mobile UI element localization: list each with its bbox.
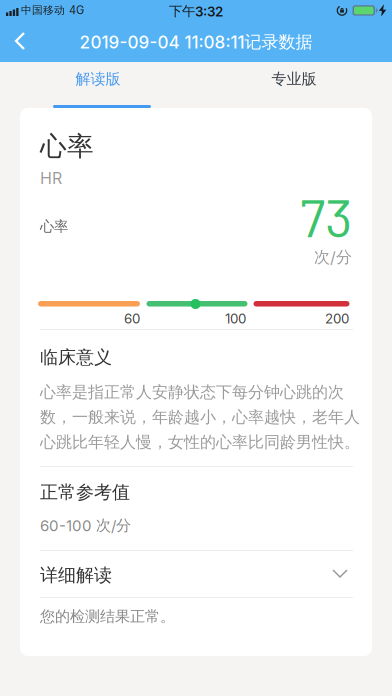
staticText: 数，一般来说，年龄越小，心率越快，老年人 bbox=[40, 407, 360, 427]
staticText: 心跳比年轻人慢，女性的心率比同龄男性快。 bbox=[40, 432, 360, 452]
staticText: 中国移动 bbox=[21, 3, 65, 17]
button[interactable]: 专业版 bbox=[196, 62, 392, 108]
staticText: 心率 bbox=[40, 217, 68, 236]
staticText: 心率是指正常人安静状态下每分钟心跳的次 bbox=[40, 382, 344, 402]
button[interactable]: 解读版 bbox=[0, 62, 196, 108]
staticText: 专业版 bbox=[271, 69, 316, 88]
staticText: 详细解读 bbox=[40, 564, 112, 587]
staticText: 2019-09-04 11:08:11记录数据 bbox=[79, 31, 312, 53]
button[interactable]: 详细解读 bbox=[20, 551, 372, 597]
staticText: 心率 bbox=[40, 129, 94, 163]
staticText: 解读版 bbox=[75, 69, 120, 88]
staticText: 次/分 bbox=[314, 247, 352, 267]
staticText: 下午3:32 bbox=[169, 3, 223, 20]
staticText: 临床意义 bbox=[40, 346, 112, 369]
staticText: 100 bbox=[225, 310, 246, 327]
staticText: 60 bbox=[124, 310, 140, 327]
staticText: 正常参考值 bbox=[40, 481, 130, 504]
staticText: 60-100 次/分 bbox=[40, 516, 131, 535]
button[interactable]: Back bbox=[0, 22, 44, 62]
staticText: 4G bbox=[69, 3, 84, 17]
staticText: 200 bbox=[325, 310, 349, 327]
staticText: HR bbox=[40, 168, 62, 188]
staticText: 73 bbox=[300, 184, 352, 248]
staticText: 您的检测结果正常。 bbox=[40, 607, 175, 626]
